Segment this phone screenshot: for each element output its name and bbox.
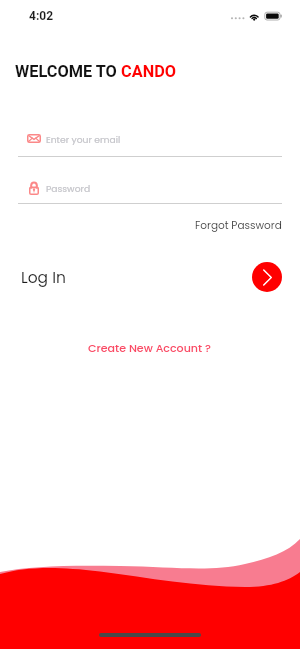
staticText: Forgot Password bbox=[195, 218, 282, 233]
button[interactable]: Password bbox=[18, 174, 282, 204]
staticText: Enter your email bbox=[46, 133, 121, 146]
button[interactable]: Enter your email bbox=[18, 127, 282, 157]
button[interactable]: Forgot Password bbox=[191, 215, 286, 236]
staticText: Log In bbox=[21, 267, 66, 289]
staticText: 4:02 bbox=[29, 9, 54, 23]
staticText: Create New Account ? bbox=[88, 340, 211, 355]
button[interactable]: Log In bbox=[18, 262, 78, 292]
staticText: Password bbox=[46, 182, 91, 195]
button[interactable]: Log In bbox=[252, 262, 282, 292]
staticText: WELCOME TO bbox=[15, 62, 121, 81]
staticText: CANDO bbox=[121, 62, 177, 81]
button[interactable]: Create New Account ? bbox=[84, 337, 215, 358]
